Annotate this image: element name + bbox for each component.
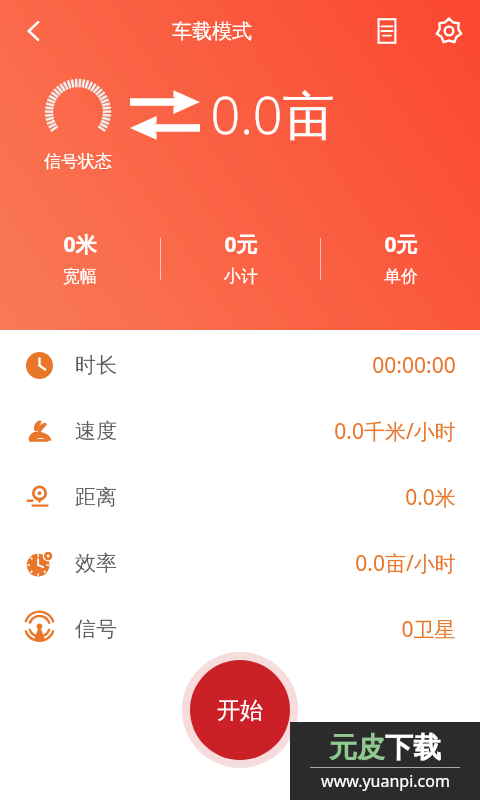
staticText: 元皮 [329,730,385,765]
staticText: www.yuanpi.com [321,770,450,792]
button[interactable]: 效率 [0,530,480,596]
staticText: 效率 [75,550,117,576]
staticText: 小计 [224,266,258,287]
staticText: 0元 [384,230,418,259]
staticText: 0元 [224,230,258,259]
staticText: 速度 [75,418,117,444]
staticText: 车载模式 [172,19,252,44]
staticText: 0米 [63,230,97,259]
staticText: 宽幅 [63,266,97,287]
button[interactable]: 距离 [0,464,480,530]
staticText: 单价 [384,266,418,287]
button[interactable]: Back [0,0,68,62]
staticText: 下载 [385,730,441,765]
button[interactable]: 速度 [0,398,480,464]
button[interactable]: 时长 [0,332,480,398]
staticText: 0卫星 [401,615,456,644]
staticText: 00:00:00 [372,351,456,380]
staticText: 0.0千米/小时 [334,417,456,446]
button[interactable]: Settings [418,0,480,62]
staticText: 距离 [75,484,117,510]
staticText: 0.0亩/小时 [355,549,456,578]
button[interactable]: 开始 [182,652,298,768]
button[interactable]: 0元 [321,230,480,287]
staticText: 信号状态 [44,151,112,172]
button[interactable]: 信号 [0,596,480,662]
staticText: 0.0米 [405,483,456,512]
staticText: 0.0亩 [210,78,335,149]
button[interactable]: 0元 [161,230,320,287]
staticText: 时长 [75,352,117,378]
button[interactable]: 0米 [0,230,160,287]
staticText: 信号 [75,616,117,642]
staticText: 开始 [217,696,263,725]
button[interactable]: Records [356,0,418,62]
